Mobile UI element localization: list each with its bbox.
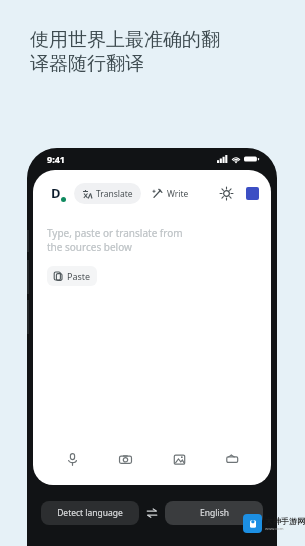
staticText: the sources below bbox=[47, 240, 132, 254]
staticText: 大神手游网 bbox=[265, 516, 305, 526]
button[interactable]: Write bbox=[150, 183, 191, 204]
staticText: D bbox=[51, 184, 61, 202]
button[interactable]: Camera translate bbox=[112, 446, 138, 472]
button[interactable]: Paste bbox=[47, 266, 97, 286]
button[interactable]: DeepL bbox=[45, 182, 67, 204]
button[interactable]: Image translate bbox=[166, 446, 192, 472]
button[interactable]: Appearance bbox=[216, 183, 236, 203]
staticText: 使用世界上最准确的翻 bbox=[30, 28, 220, 52]
staticText: Detect language bbox=[57, 507, 123, 519]
staticText: 译器随行翻译 bbox=[30, 52, 144, 76]
staticText: www.com bbox=[265, 526, 284, 531]
button[interactable]: Swap languages bbox=[139, 501, 165, 525]
button[interactable]: Translate bbox=[74, 183, 141, 204]
button[interactable]: Voice input bbox=[59, 446, 85, 472]
button[interactable]: Detect language bbox=[41, 501, 139, 525]
staticText: Type, paste or translate from bbox=[47, 226, 183, 240]
button[interactable]: English bbox=[165, 501, 263, 525]
staticText: Paste bbox=[67, 270, 91, 282]
button[interactable]: Account bbox=[246, 187, 259, 200]
staticText: Write bbox=[167, 188, 189, 200]
button[interactable]: Document translate bbox=[219, 446, 245, 472]
staticText: English bbox=[200, 507, 229, 519]
staticText: 9:41 bbox=[47, 153, 65, 165]
staticText: Translate bbox=[96, 188, 133, 200]
